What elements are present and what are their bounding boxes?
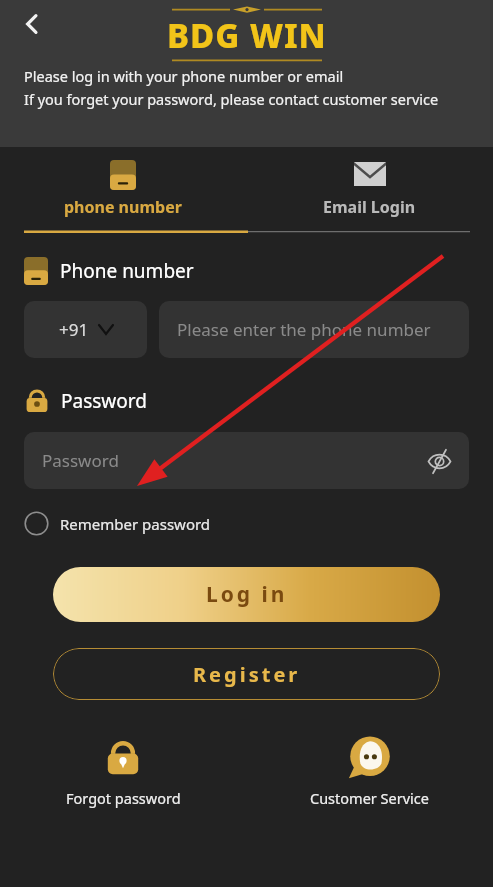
button[interactable]: Back xyxy=(8,0,56,48)
staticText: Customer Service xyxy=(310,788,429,808)
button[interactable]: Customer Service xyxy=(246,736,493,808)
staticText: Password xyxy=(61,388,147,414)
button[interactable]: Show password xyxy=(419,441,459,481)
button[interactable]: Password xyxy=(24,432,469,489)
button[interactable]: Register xyxy=(53,648,440,700)
staticText: BDG WIN xyxy=(167,13,327,58)
staticText: Log in xyxy=(206,580,288,609)
staticText: Phone number xyxy=(60,258,194,284)
staticText: phone number xyxy=(64,196,182,218)
staticText: Forgot password xyxy=(66,788,181,808)
staticText: +91 xyxy=(59,318,89,341)
staticText: Register xyxy=(193,661,301,688)
staticText: Password xyxy=(42,449,119,472)
button[interactable]: +91 xyxy=(24,301,147,358)
staticText: Remember password xyxy=(60,514,211,534)
button[interactable]: Please enter the phone number xyxy=(159,301,469,358)
staticText: Please log in with your phone number or … xyxy=(24,66,344,86)
button[interactable]: Remember password xyxy=(24,511,211,536)
button[interactable]: Log in xyxy=(53,567,440,622)
staticText: If you forget your password, please cont… xyxy=(24,89,439,109)
button[interactable]: Email Login xyxy=(246,147,493,235)
button[interactable]: Forgot password xyxy=(0,736,246,808)
staticText: Please enter the phone number xyxy=(177,318,431,341)
staticText: Email Login xyxy=(323,196,416,218)
button[interactable]: phone number xyxy=(0,147,246,235)
